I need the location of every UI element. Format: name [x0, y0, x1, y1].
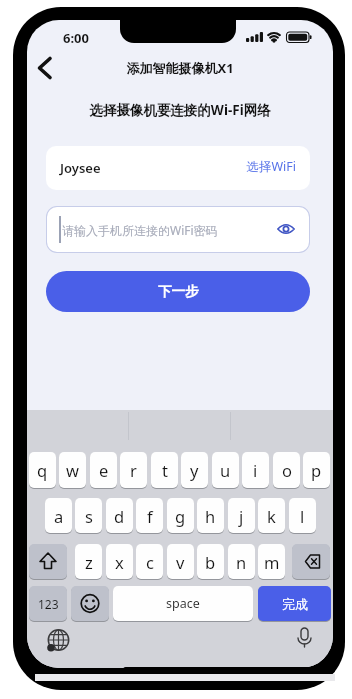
- staticText: d: [114, 505, 125, 527]
- staticText: e: [99, 459, 109, 481]
- button[interactable]: n: [228, 544, 255, 579]
- button[interactable]: 完成: [258, 586, 331, 621]
- button[interactable]: y: [181, 452, 208, 488]
- staticText: Joysee: [60, 159, 180, 184]
- button[interactable]: s: [75, 498, 102, 533]
- staticText: z: [85, 551, 93, 573]
- button[interactable]: b: [197, 544, 224, 579]
- button[interactable]: h: [197, 498, 224, 533]
- button[interactable]: t: [151, 452, 178, 488]
- staticText: g: [175, 505, 186, 527]
- button[interactable]: g: [167, 498, 194, 533]
- button[interactable]: z: [75, 544, 102, 579]
- button[interactable]: f: [136, 498, 163, 533]
- button[interactable]: o: [273, 452, 300, 488]
- button[interactable]: e: [90, 452, 117, 488]
- button[interactable]: [292, 544, 330, 579]
- staticText: f: [147, 505, 153, 527]
- staticText: v: [176, 551, 185, 573]
- button[interactable]: c: [136, 544, 163, 579]
- staticText: y: [190, 459, 199, 481]
- button[interactable]: [31, 54, 59, 82]
- staticText: j: [239, 505, 244, 527]
- staticText: t: [162, 459, 168, 481]
- button[interactable]: q: [29, 452, 56, 488]
- button[interactable]: l: [289, 498, 316, 533]
- staticText: 6:00: [57, 29, 95, 54]
- staticText: h: [205, 505, 216, 527]
- staticText: p: [311, 459, 322, 481]
- staticText: i: [253, 459, 258, 481]
- staticText: l: [300, 505, 305, 527]
- button[interactable]: Joysee: [46, 146, 310, 190]
- button[interactable]: a: [45, 498, 72, 533]
- button[interactable]: 下一步: [46, 271, 310, 312]
- staticText: c: [146, 551, 154, 573]
- staticText: u: [220, 459, 231, 481]
- button[interactable]: x: [106, 544, 133, 579]
- staticText: r: [130, 459, 137, 481]
- staticText: 完成: [282, 596, 308, 612]
- staticText: n: [236, 551, 247, 573]
- button[interactable]: p: [303, 452, 330, 488]
- button[interactable]: 请输入手机所连接的WiFi密码: [46, 206, 310, 253]
- staticText: 选择摄像机要连接的Wi-Fi网络: [40, 101, 320, 127]
- staticText: x: [115, 551, 124, 573]
- staticText: w: [66, 459, 79, 481]
- staticText: a: [54, 505, 64, 527]
- staticText: 选择WiFi: [190, 158, 296, 182]
- button[interactable]: i: [242, 452, 269, 488]
- button[interactable]: u: [212, 452, 239, 488]
- button[interactable]: 123: [29, 586, 67, 621]
- staticText: k: [267, 505, 276, 527]
- staticText: s: [85, 505, 93, 527]
- staticText: m: [264, 551, 280, 573]
- button[interactable]: j: [228, 498, 255, 533]
- staticText: o: [282, 459, 292, 481]
- staticText: space: [166, 595, 200, 612]
- staticText: b: [205, 551, 216, 573]
- button[interactable]: d: [106, 498, 133, 533]
- staticText: q: [37, 459, 48, 481]
- button[interactable]: r: [120, 452, 147, 488]
- button[interactable]: [71, 586, 109, 621]
- button[interactable]: v: [167, 544, 194, 579]
- staticText: 下一步: [158, 283, 199, 300]
- staticText: 123: [38, 596, 59, 612]
- button[interactable]: w: [59, 452, 86, 488]
- button[interactable]: space: [113, 586, 253, 621]
- button[interactable]: [29, 544, 67, 579]
- button[interactable]: m: [258, 544, 285, 579]
- button[interactable]: k: [258, 498, 285, 533]
- staticText: 请输入手机所连接的WiFi密码: [62, 222, 262, 245]
- staticText: 添加智能摄像机X1: [80, 59, 280, 84]
